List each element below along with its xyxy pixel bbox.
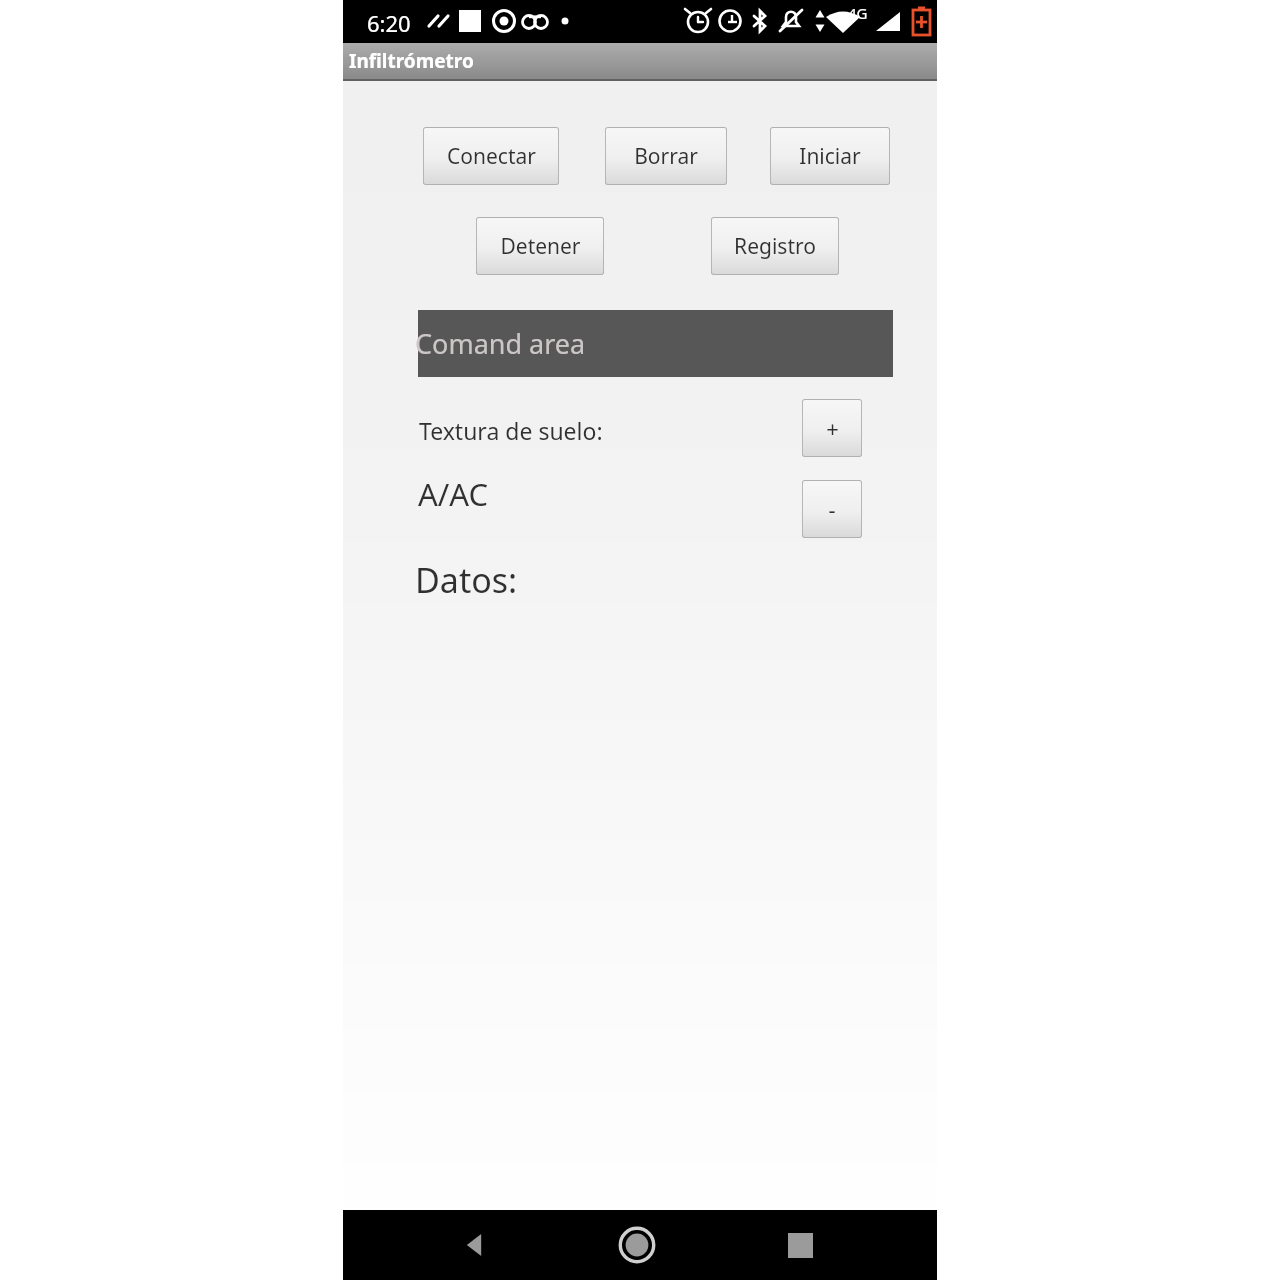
staticText: Detener [500,232,581,261]
button[interactable]: Detener [476,217,604,275]
staticText: A/AC [418,473,489,515]
staticText: Conectar [447,142,536,171]
staticText: Iniciar [799,142,861,171]
staticText: Registro [734,232,816,261]
staticText: - [828,494,836,524]
button[interactable]: - [802,480,862,538]
staticText: 6:20 [367,8,411,38]
button[interactable]: Iniciar [770,127,890,185]
staticText: Infiltrómetro [349,48,474,74]
staticText: Textura de suelo: [419,415,603,446]
button[interactable]: Back [444,1215,504,1275]
staticText: 4G [848,3,868,23]
button[interactable]: Borrar [605,127,727,185]
button[interactable]: Home [607,1215,667,1275]
staticText: + [826,413,839,443]
staticText: Comand area [415,325,586,362]
button[interactable]: Comand area [418,310,893,377]
button[interactable]: Conectar [423,127,559,185]
button[interactable]: + [802,399,862,457]
button[interactable]: Recents [770,1215,830,1275]
staticText: Borrar [634,142,698,171]
button[interactable]: Registro [711,217,839,275]
staticText: Datos: [415,557,518,603]
